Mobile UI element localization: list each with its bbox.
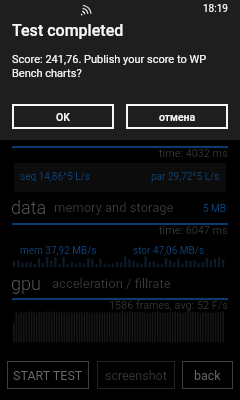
button[interactable]: отмена [126, 104, 228, 129]
staticText: 18:19 [203, 3, 228, 15]
staticText: time: 4032 ms [159, 147, 228, 160]
button[interactable]: back [182, 361, 233, 389]
staticText: data [11, 197, 47, 218]
staticText: отмена [159, 111, 196, 123]
staticText: memory and storage [54, 200, 174, 215]
other: Wi-Fi [80, 4, 92, 16]
staticText: back [194, 368, 221, 383]
button[interactable]: screenshot [97, 361, 175, 389]
button[interactable]: START TEST [7, 361, 89, 389]
staticText: stor 47,06 MB/s [133, 245, 205, 257]
staticText: time: 6047 ms [159, 224, 228, 237]
button[interactable]: OK [12, 104, 114, 129]
staticText: OK [56, 111, 70, 123]
staticText: seq 14,86^5 L/s [20, 171, 91, 183]
staticText: Score: 241,76. Publish your score to WP … [12, 53, 207, 80]
staticText: Test completed [12, 21, 124, 40]
staticText: screenshot [105, 368, 167, 383]
staticText: 5 MB [203, 203, 227, 215]
staticText: START TEST [13, 368, 83, 383]
staticText: 1586 frames, avg: 52 F/s [109, 299, 228, 312]
staticText: mem 37,92 MB/s [20, 245, 97, 257]
staticText: par 29,72^5 L/s [151, 171, 220, 183]
staticText: gpu [11, 273, 41, 294]
staticText: acceleration / fillrate [52, 276, 171, 291]
